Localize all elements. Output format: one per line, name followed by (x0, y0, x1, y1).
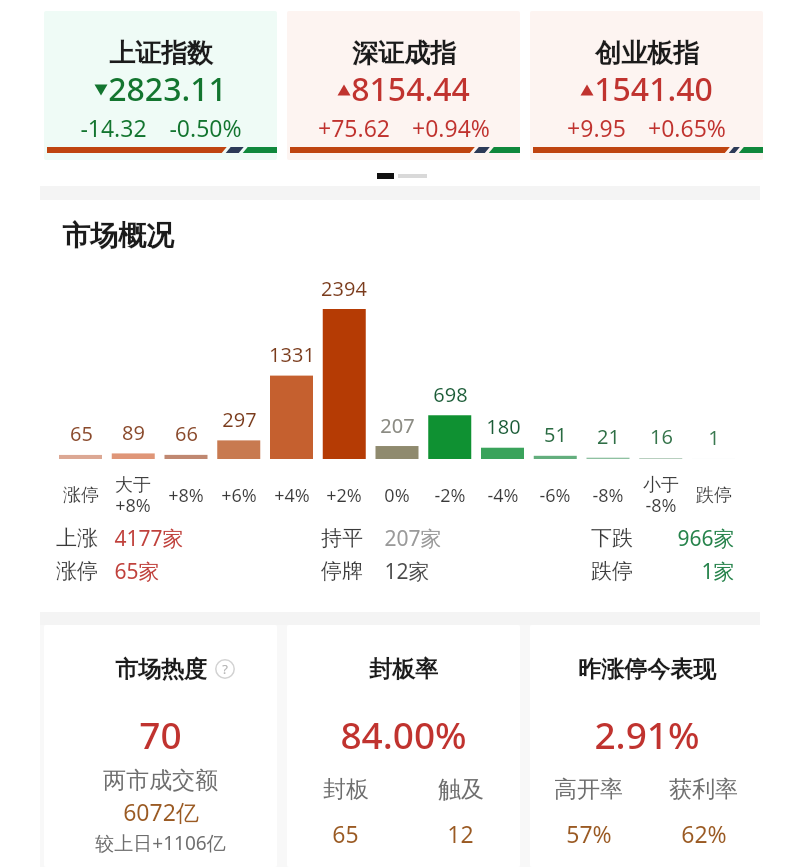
staticText: 207 (380, 412, 415, 439)
staticText: 65 (332, 818, 359, 849)
staticText: 1家 (701, 557, 735, 586)
staticText: 两市成交额 (103, 766, 218, 795)
staticText: 207家 (384, 524, 442, 553)
staticText: 70 (139, 709, 182, 757)
staticText: +2% (326, 483, 362, 508)
staticText: 跌停 (591, 558, 633, 584)
button[interactable]: 封板率 (287, 625, 520, 867)
staticText: 昨涨停今表现 (578, 655, 716, 684)
staticText: 65 (70, 420, 93, 447)
staticText: 停牌 (321, 558, 363, 584)
staticText: 上证指数 (109, 37, 213, 70)
button[interactable]: 上证指数 (44, 11, 277, 160)
staticText: 1331 (269, 341, 315, 368)
staticText: 涨停 (63, 484, 99, 507)
staticText: 跌停 (696, 484, 732, 507)
staticText: +6% (221, 483, 257, 508)
staticText: 高开率 (554, 775, 623, 804)
staticText: 89 (122, 419, 145, 446)
staticText: 封板 (323, 775, 369, 804)
staticText: +8% (168, 483, 204, 508)
staticText: 小于 -8% (643, 474, 679, 517)
staticText: 2.91% (594, 709, 700, 757)
staticText: 6072亿 (123, 796, 199, 827)
staticText: 12家 (384, 557, 430, 586)
staticText: 180 (486, 413, 521, 440)
staticText: 966家 (677, 524, 735, 553)
staticText: -2% (434, 483, 466, 508)
staticText: 市场概况 (62, 218, 174, 253)
staticText: 市场热度 (115, 655, 207, 684)
staticText: 84.00% (340, 709, 467, 757)
staticText: +75.62 (318, 112, 390, 141)
button[interactable]: 创业板指 (530, 11, 763, 160)
staticText: 大于 +8% (115, 474, 151, 517)
staticText: ? (222, 660, 228, 678)
button[interactable]: 昨涨停今表现 (530, 625, 763, 867)
staticText: 上涨 (56, 525, 98, 551)
staticText: 297 (222, 406, 257, 433)
staticText: 触及 (438, 775, 484, 804)
staticText: 4177家 (114, 524, 184, 553)
staticText: +0.94% (412, 112, 490, 141)
button[interactable]: Help (215, 659, 235, 679)
staticText: 12 (447, 818, 474, 849)
staticText: 下跌 (591, 525, 633, 551)
staticText: 封板率 (369, 655, 438, 684)
button[interactable]: 市场热度 (44, 625, 277, 867)
staticText: 创业板指 (595, 37, 699, 70)
staticText: +0.65% (648, 112, 726, 141)
staticText: -0.50% (169, 112, 242, 141)
staticText: +9.95 (567, 112, 626, 141)
staticText: 8154.44 (351, 67, 470, 109)
staticText: 2823.11 (108, 67, 227, 109)
staticText: 51 (544, 421, 567, 448)
staticText: 16 (650, 423, 673, 450)
staticText: 涨停 (56, 558, 98, 584)
staticText: 深证成指 (352, 37, 456, 70)
staticText: 62% (681, 818, 727, 849)
staticText: -14.32 (80, 112, 147, 141)
staticText: 0% (384, 483, 410, 508)
staticText: -8% (592, 483, 624, 508)
staticText: 较上日+1106亿 (95, 830, 226, 856)
staticText: 获利率 (669, 775, 738, 804)
staticText: 持平 (321, 525, 363, 551)
button[interactable]: 深证成指 (287, 11, 520, 160)
staticText: -4% (487, 483, 519, 508)
staticText: 1541.40 (594, 67, 713, 109)
staticText: +4% (274, 483, 310, 508)
staticText: 66 (175, 420, 198, 447)
staticText: 698 (433, 381, 468, 408)
staticText: 1 (708, 424, 720, 451)
staticText: 21 (597, 423, 620, 450)
staticText: -6% (539, 483, 571, 508)
staticText: 65家 (114, 557, 160, 586)
staticText: 2394 (321, 275, 367, 302)
staticText: 57% (566, 818, 612, 849)
